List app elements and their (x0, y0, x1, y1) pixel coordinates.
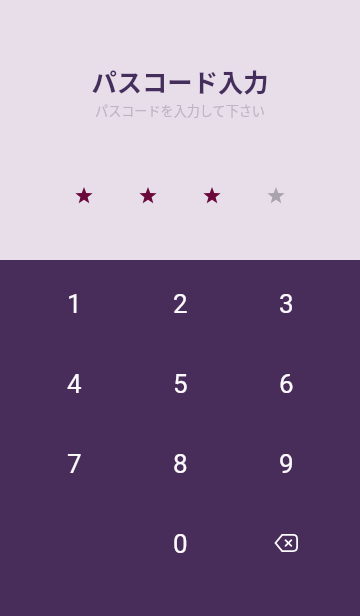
staticText: 6 (279, 369, 294, 399)
button[interactable]: 0 (127, 503, 233, 583)
button[interactable]: 1 (21, 263, 127, 343)
staticText: 5 (173, 369, 188, 399)
button[interactable]: 3 (233, 263, 339, 343)
button[interactable]: 4 (21, 343, 127, 423)
staticText: 2 (173, 289, 188, 319)
staticText: パスコード入力 (91, 63, 269, 100)
staticText: 8 (173, 449, 188, 479)
button[interactable]: 8 (127, 423, 233, 503)
button[interactable]: 6 (233, 343, 339, 423)
staticText: 4 (67, 369, 82, 399)
staticText: 1 (67, 289, 82, 319)
button[interactable]: 9 (233, 423, 339, 503)
staticText: 9 (279, 449, 294, 479)
staticText: 3 (279, 289, 294, 319)
staticText: 0 (173, 529, 188, 559)
button[interactable]: 5 (127, 343, 233, 423)
staticText: パスコードを入力して下さい (95, 101, 265, 120)
button[interactable]: Delete (233, 503, 339, 583)
staticText: 7 (67, 449, 82, 479)
button[interactable]: 7 (21, 423, 127, 503)
button[interactable]: 2 (127, 263, 233, 343)
